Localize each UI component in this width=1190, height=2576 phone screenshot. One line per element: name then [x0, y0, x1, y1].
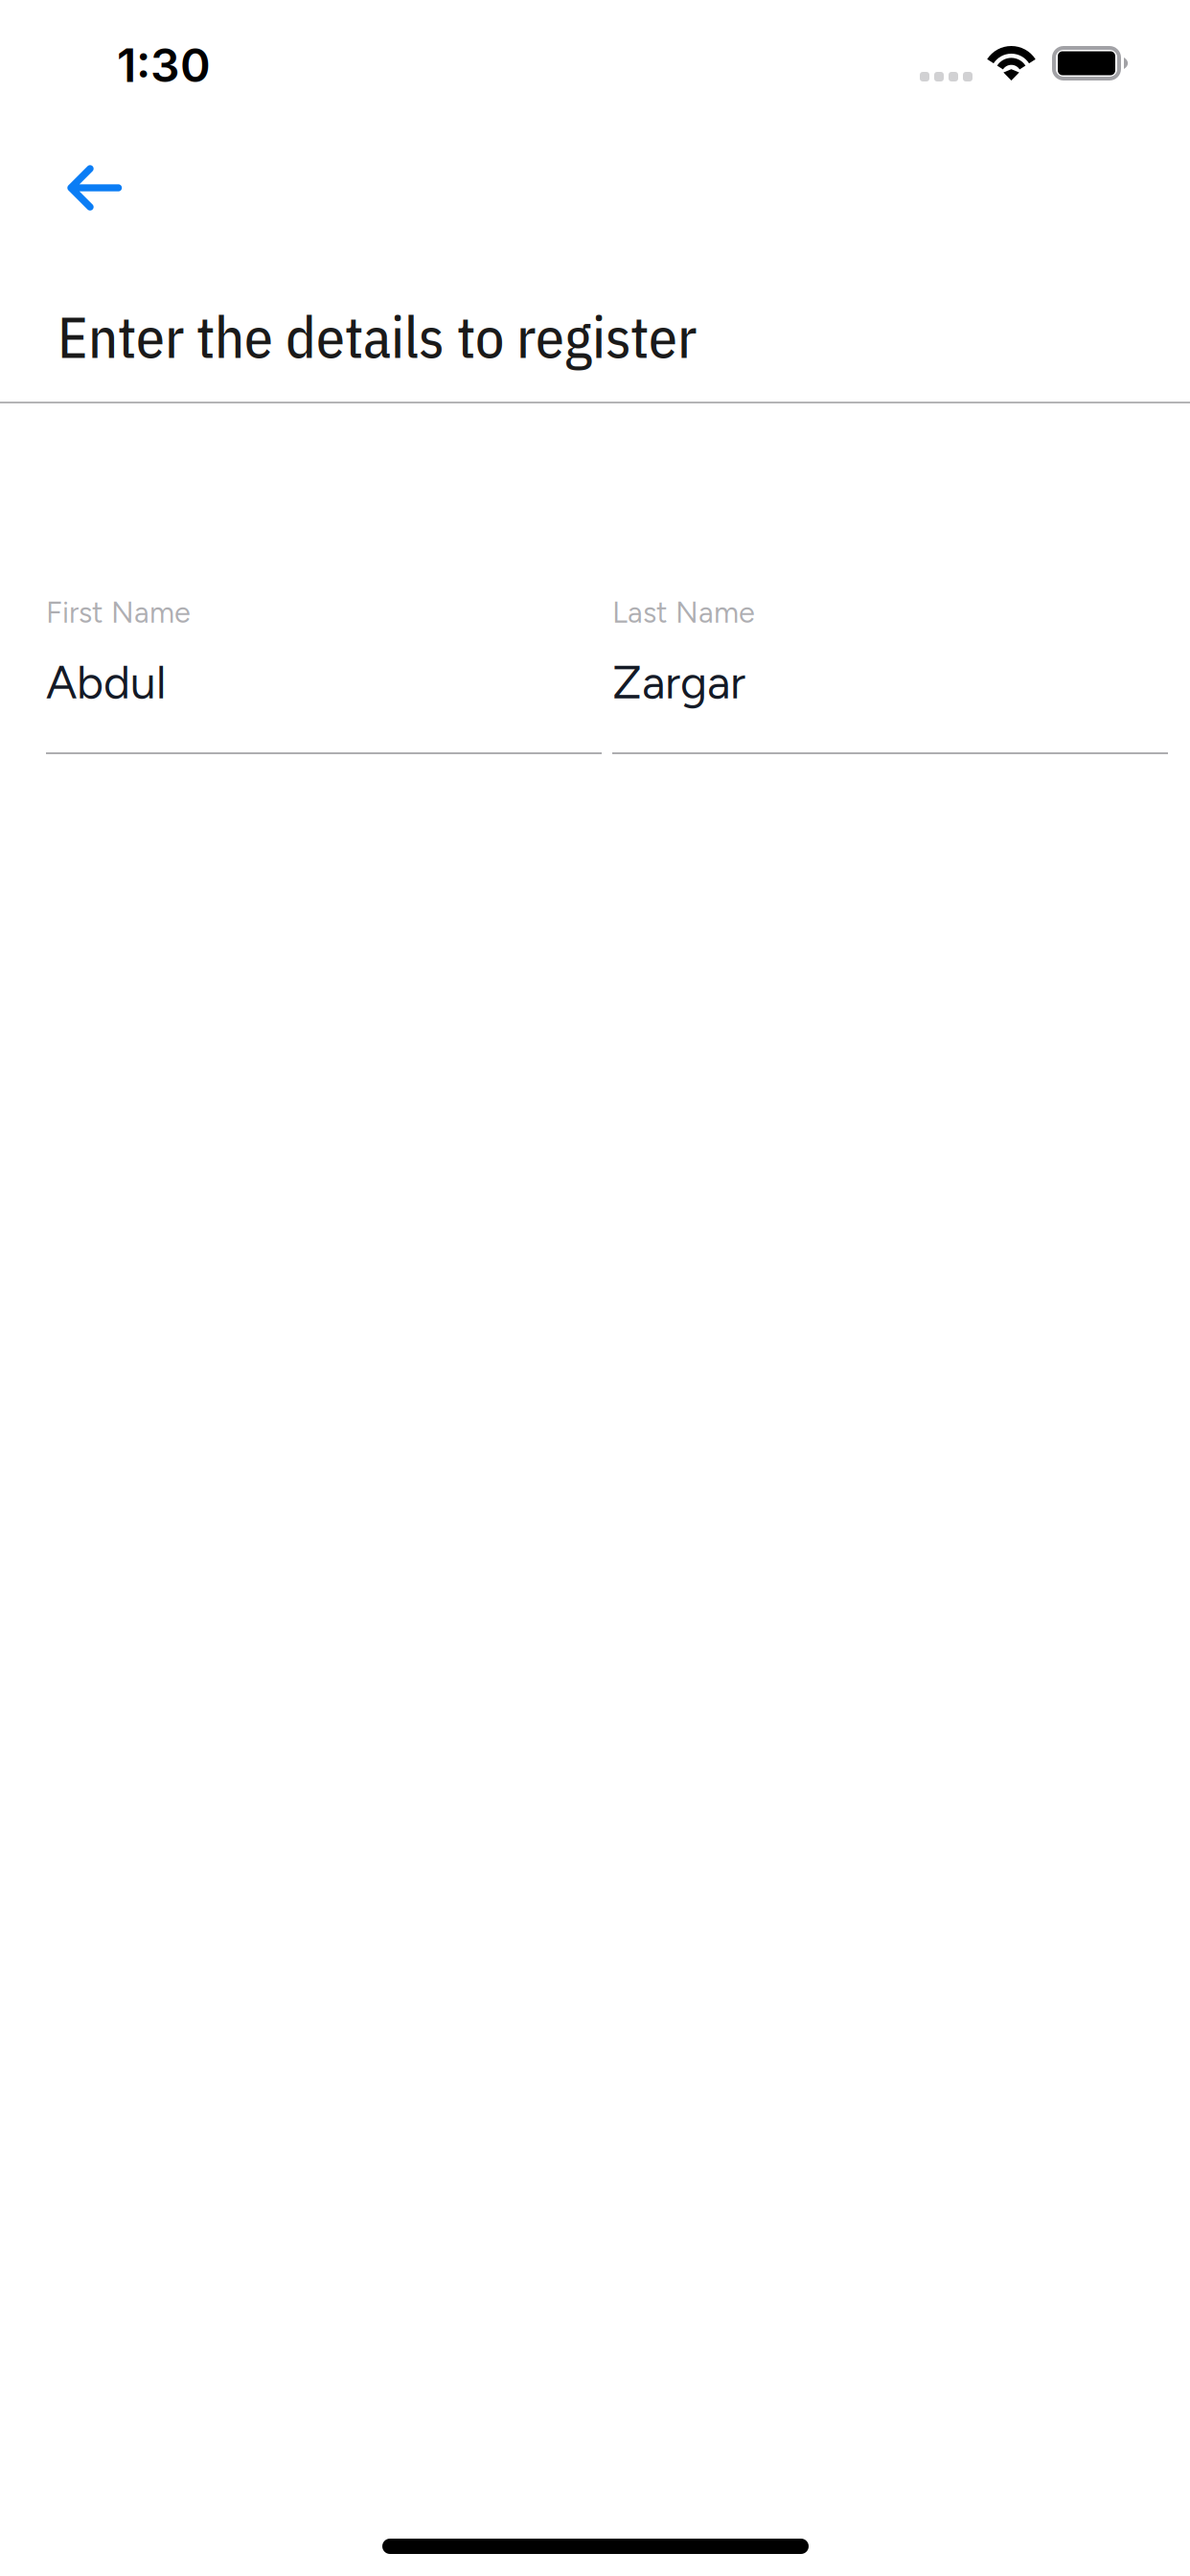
staticText: First Name — [46, 595, 191, 630]
staticText: Zargar — [612, 655, 745, 710]
button[interactable]: Back — [55, 140, 155, 236]
button[interactable]: Last Name — [612, 597, 1168, 754]
button[interactable]: First Name — [46, 597, 602, 754]
staticText: Last Name — [612, 595, 755, 630]
staticText: 1:30 — [117, 37, 211, 93]
staticText: Enter the details to register — [57, 299, 697, 374]
staticText: Abdul — [46, 655, 166, 710]
